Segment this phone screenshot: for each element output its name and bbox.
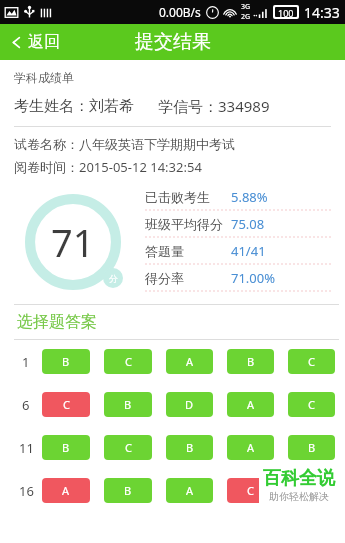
staticText: C (308, 354, 315, 369)
button[interactable]: A (227, 392, 274, 417)
staticText: 2G (241, 12, 251, 22)
staticText: C (125, 354, 132, 369)
button[interactable]: C (104, 349, 152, 374)
staticText: 选择题答案 (17, 312, 97, 332)
staticText: 提交结果 (135, 30, 211, 54)
staticText: A (186, 354, 194, 369)
button[interactable]: B (288, 478, 335, 503)
button[interactable]: B (104, 392, 152, 417)
staticText: D (185, 397, 194, 412)
button[interactable]: B (104, 478, 152, 503)
staticText: 5.88% (231, 188, 268, 206)
staticText: 学信号：334989 (158, 96, 270, 116)
staticText: 分 (109, 273, 118, 284)
staticText: B (186, 440, 194, 455)
button[interactable]: C (104, 435, 152, 460)
staticText: 得分率 (145, 270, 184, 286)
staticText: B (62, 354, 70, 369)
staticText: 答题量 (145, 243, 184, 259)
staticText: B (124, 397, 132, 412)
staticText: 0.00B/s (159, 4, 201, 20)
staticText: 11 (19, 439, 34, 457)
staticText: 100 (278, 7, 294, 17)
staticText: B (308, 483, 316, 498)
staticText: B (308, 440, 316, 455)
staticText: 百科全说 (263, 467, 335, 490)
button[interactable]: A (227, 435, 274, 460)
staticText: 试卷名称：八年级英语下学期期中考试 (14, 136, 235, 152)
staticText: 已击败考生 (145, 189, 210, 205)
staticText: 41/41 (231, 242, 266, 260)
staticText: C (63, 397, 70, 412)
staticText: 6 (22, 396, 30, 414)
staticText: C (308, 397, 315, 412)
button[interactable]: A (42, 478, 90, 503)
staticText: 学科成绩单 (14, 70, 74, 85)
staticText: 考生姓名：刘若希 (14, 97, 134, 116)
staticText: C (247, 483, 254, 498)
staticText: A (247, 397, 255, 412)
button[interactable]: A (166, 478, 213, 503)
button[interactable]: C (288, 392, 335, 417)
button[interactable]: C (227, 478, 274, 503)
staticText: 返回 (28, 32, 60, 52)
button[interactable]: D (166, 392, 213, 417)
staticText: 班级平均得分 (145, 216, 223, 232)
staticText: 助你轻松解决 (269, 490, 329, 503)
staticText: 71 (51, 216, 95, 268)
staticText: 1 (22, 353, 30, 371)
staticText: C (125, 440, 132, 455)
staticText: B (62, 440, 70, 455)
staticText: 阅卷时间：2015-05-12 14:32:54 (14, 158, 202, 176)
staticText: 71.00% (231, 269, 276, 287)
button[interactable]: B (288, 435, 335, 460)
staticText: A (62, 483, 70, 498)
staticText: 14:33 (304, 3, 340, 22)
button[interactable]: B (42, 349, 90, 374)
button[interactable]: B (227, 349, 274, 374)
button[interactable]: B (42, 435, 90, 460)
staticText: 16 (19, 482, 34, 500)
button[interactable]: C (288, 349, 335, 374)
button[interactable]: A (166, 349, 213, 374)
button[interactable]: C (42, 392, 90, 417)
staticText: A (186, 483, 194, 498)
staticText: 75.08 (231, 215, 265, 233)
staticText: B (124, 483, 132, 498)
button[interactable]: B (166, 435, 213, 460)
staticText: A (247, 440, 255, 455)
button[interactable]: 返回 (0, 27, 72, 57)
staticText: 3G (241, 2, 251, 12)
staticText: B (247, 354, 255, 369)
